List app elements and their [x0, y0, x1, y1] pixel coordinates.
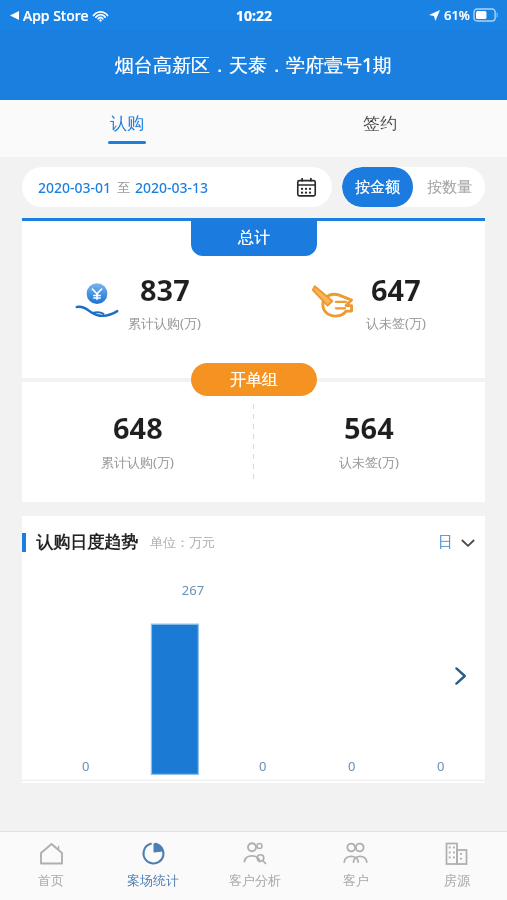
staticText: 客户分析: [229, 872, 281, 888]
staticText: 认购: [110, 113, 144, 134]
staticText: 单位：万元: [150, 534, 215, 550]
staticText: 564: [344, 408, 394, 447]
staticText: 日: [438, 533, 453, 552]
button[interactable]: 开单组: [191, 363, 317, 396]
staticText: 首页: [38, 872, 64, 888]
staticText: 647: [371, 270, 421, 309]
button[interactable]: 客户: [305, 832, 406, 900]
staticText: 0: [82, 757, 90, 775]
staticText: 签约: [363, 113, 397, 134]
staticText: 烟台高新区．天泰．学府壹号1期: [115, 52, 392, 78]
staticText: 10:22: [236, 6, 272, 25]
staticText: 2020-03-13: [135, 178, 209, 197]
staticText: 按数量: [427, 178, 472, 197]
staticText: 累计认购(万): [128, 314, 201, 332]
button[interactable]: 首页: [0, 832, 102, 900]
staticText: 开单组: [230, 370, 278, 390]
staticText: 按金额: [355, 178, 400, 197]
button[interactable]: 2020-03-01: [22, 167, 332, 207]
staticText: 认未签(万): [339, 453, 399, 471]
button[interactable]: 签约: [253, 100, 507, 157]
staticText: 至: [117, 179, 130, 195]
staticText: 0: [259, 757, 267, 775]
staticText: 认购日度趋势: [36, 532, 138, 553]
button[interactable]: 按金额: [342, 167, 413, 207]
button[interactable]: 案场统计: [102, 832, 204, 900]
button[interactable]: 认购: [0, 100, 253, 157]
staticText: 认未签(万): [366, 314, 426, 332]
staticText: 837: [140, 270, 190, 309]
button[interactable]: 日: [428, 527, 485, 558]
staticText: 累计认购(万): [101, 453, 174, 471]
button[interactable]: Next page: [443, 659, 477, 693]
staticText: 房源: [444, 872, 470, 888]
button[interactable]: 按数量: [413, 167, 485, 207]
staticText: 61%: [444, 6, 470, 24]
button[interactable]: 总计: [191, 220, 317, 256]
staticText: 648: [113, 408, 163, 447]
staticText: App Store: [23, 6, 89, 25]
staticText: 0: [348, 757, 356, 775]
button[interactable]: 客户分析: [204, 832, 305, 900]
staticText: 客户: [343, 872, 369, 888]
staticText: 案场统计: [127, 872, 179, 888]
button[interactable]: 房源: [406, 832, 507, 900]
staticText: 2020-03-01: [38, 178, 112, 197]
staticText: 267: [173, 581, 213, 599]
other: Pick date range: [297, 178, 316, 197]
staticText: 0: [437, 757, 445, 775]
staticText: 总计: [238, 228, 270, 248]
